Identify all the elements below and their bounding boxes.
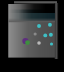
button[interactable]: Map xyxy=(0,0,64,72)
